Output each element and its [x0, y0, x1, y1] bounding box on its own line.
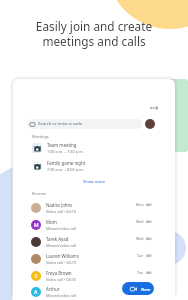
button[interactable]: Team meeting	[13, 142, 175, 154]
other: Video call	[146, 219, 152, 224]
staticText: A	[34, 289, 38, 296]
staticText: Missed video call	[46, 293, 77, 298]
button[interactable]: Show more	[81, 177, 108, 187]
staticText: Wed	[136, 219, 144, 224]
button[interactable]: Search or enter a code	[27, 119, 142, 129]
staticText: M	[34, 222, 39, 229]
other: Video call	[146, 270, 152, 275]
staticText: New	[141, 286, 151, 292]
staticText: Search or enter a code	[38, 121, 83, 127]
button[interactable]: New	[122, 282, 154, 295]
button[interactable]: F	[13, 267, 175, 284]
staticText: F	[35, 273, 38, 280]
staticText: Tue	[137, 270, 144, 275]
staticText: Freya Brown	[46, 270, 72, 276]
staticText: Lauren Williams	[46, 253, 79, 259]
other: Video call	[146, 253, 152, 258]
other: Video call	[146, 236, 152, 241]
staticText: Team meeting	[47, 142, 77, 148]
button[interactable]: Account	[145, 119, 155, 129]
other: Video call	[146, 287, 152, 292]
staticText: Family game night	[47, 160, 86, 166]
staticText: Tarek Ayad	[46, 236, 69, 242]
button[interactable]: Nadira Johns	[13, 199, 175, 216]
staticText: Tue	[137, 253, 144, 258]
staticText: Arthur	[46, 286, 60, 292]
staticText: Mon	[136, 287, 144, 292]
staticText: Missed video call	[46, 226, 77, 231]
staticText: 7:00 a.m. – 8:00 p.m.	[47, 167, 84, 172]
staticText: Nadira Johns	[46, 202, 73, 208]
staticText: Wed	[136, 236, 144, 241]
staticText: Mom	[46, 219, 57, 225]
button[interactable]: Family game night	[13, 160, 175, 172]
button[interactable]: A	[13, 284, 175, 300]
button[interactable]: Lauren Williams	[13, 250, 175, 267]
staticText: Recents	[32, 191, 47, 196]
staticText: 1:00 a.m. – 1:30 p.m.	[47, 149, 84, 154]
staticText: Missed video call	[46, 243, 77, 248]
button[interactable]: Tarek Ayad	[13, 233, 175, 250]
staticText: Video call • 04:19	[46, 209, 77, 214]
staticText: Meetings	[32, 134, 49, 139]
staticText: Mon	[136, 202, 144, 207]
staticText: Video call • 34:19	[46, 260, 77, 265]
staticText: Video call • 04:10	[46, 277, 77, 282]
button[interactable]: M	[13, 216, 175, 233]
staticText: Easily join and create meetings and call…	[0, 18, 188, 50]
other: Video call	[146, 202, 152, 207]
